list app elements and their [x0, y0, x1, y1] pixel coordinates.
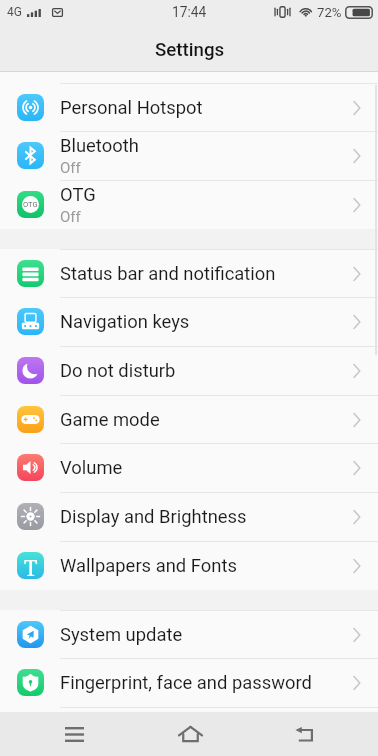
button[interactable]: Fingerprint, face and password — [0, 658, 378, 707]
staticText: OTG — [60, 184, 96, 206]
staticText: Bluetooth — [60, 135, 139, 157]
staticText: Off — [60, 208, 81, 226]
staticText: Display and Brightness — [60, 506, 247, 528]
staticText: T — [24, 552, 38, 579]
button[interactable]: Volume — [0, 443, 378, 492]
staticText: Navigation keys — [60, 311, 190, 333]
staticText: 72% — [317, 5, 342, 20]
staticText: Volume — [60, 457, 123, 479]
button[interactable]: Status bar and notification — [0, 249, 378, 298]
staticText: Do not disturb — [60, 360, 176, 382]
button[interactable]: T — [0, 541, 378, 590]
staticText: OTG — [23, 200, 38, 209]
staticText: Fingerprint, face and password — [60, 672, 312, 694]
button[interactable]: Bluetooth — [0, 131, 378, 180]
staticText: 17:44 — [172, 4, 207, 20]
button[interactable]: Personal Hotspot — [0, 83, 378, 132]
button[interactable]: Display and Brightness — [0, 492, 378, 541]
button[interactable]: Back — [274, 712, 334, 756]
staticText: 4G — [7, 5, 22, 19]
button[interactable]: Recent apps — [44, 712, 104, 756]
staticText: Wallpapers and Fonts — [60, 555, 237, 577]
staticText: Status bar and notification — [60, 263, 276, 285]
staticText: Off — [60, 159, 81, 177]
button[interactable]: Do not disturb — [0, 346, 378, 395]
staticText: System update — [60, 624, 183, 646]
staticText: Game mode — [60, 409, 160, 431]
button[interactable]: Game mode — [0, 395, 378, 444]
staticText: Personal Hotspot — [60, 97, 203, 119]
button[interactable]: Navigation keys — [0, 297, 378, 346]
button[interactable]: System update — [0, 610, 378, 659]
button[interactable]: OTG — [0, 180, 378, 229]
staticText: Settings — [155, 39, 225, 61]
button[interactable]: Home — [160, 712, 220, 756]
